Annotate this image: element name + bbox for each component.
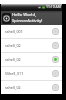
staticText: Hello World, [12, 12, 37, 18]
staticText: sshell_001 [5, 29, 52, 34]
button[interactable]: SShell_011 [1, 67, 62, 80]
staticText: SShell_011 [5, 71, 52, 76]
staticText: sshell_02 [5, 57, 52, 62]
staticText: sshell_02 [5, 43, 52, 48]
staticText: SpinnerActivity! [12, 18, 43, 24]
button[interactable]: sshell_02 [1, 81, 62, 94]
button[interactable]: sshell_02 [1, 53, 62, 66]
staticText: sshell_02 [5, 85, 52, 90]
button[interactable]: sshell_02 [1, 39, 62, 52]
staticText: 11:10 AM [46, 4, 61, 9]
button[interactable]: sshell_001 [1, 25, 62, 38]
